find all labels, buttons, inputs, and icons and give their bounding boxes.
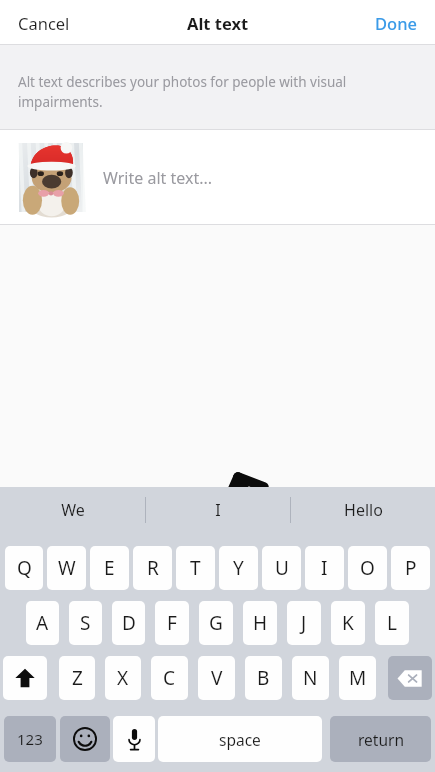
button[interactable]: Cancel (6, 4, 82, 42)
staticText: X (117, 665, 129, 691)
staticText: D (122, 610, 136, 636)
button[interactable]: 123 (4, 716, 56, 762)
button[interactable]: P (391, 546, 430, 590)
staticText: Alt text (187, 12, 249, 34)
button[interactable]: Hello (291, 487, 435, 532)
staticText: E (104, 555, 115, 581)
button[interactable]: W (47, 546, 86, 590)
button[interactable]: L (375, 601, 409, 645)
staticText: F (167, 610, 177, 636)
staticText: 123 (17, 729, 43, 749)
button[interactable]: S (69, 601, 102, 645)
staticText: P (405, 555, 417, 581)
button[interactable]: Q (5, 546, 43, 590)
button[interactable]: Emoji (60, 716, 110, 762)
staticText: return (358, 729, 404, 750)
button[interactable]: Backspace (388, 656, 432, 700)
button[interactable]: X (105, 656, 141, 700)
button[interactable]: C (151, 656, 188, 700)
button[interactable]: space (158, 716, 322, 762)
button[interactable]: A (26, 601, 59, 645)
staticText: S (80, 610, 91, 636)
button[interactable]: N (292, 656, 329, 700)
button[interactable]: M (339, 656, 376, 700)
staticText: space (219, 729, 261, 750)
staticText: O (360, 555, 375, 581)
button[interactable]: V (198, 656, 235, 700)
button[interactable]: T (176, 546, 215, 590)
button[interactable]: O (348, 546, 387, 590)
button[interactable]: Shift (3, 656, 47, 700)
staticText: I (321, 555, 328, 581)
staticText: B (257, 665, 270, 691)
staticText: Done (375, 12, 417, 34)
staticText: L (387, 610, 397, 636)
button[interactable]: B (245, 656, 282, 700)
staticText: J (301, 610, 307, 636)
staticText: Q (17, 555, 32, 581)
staticText: Z (72, 665, 83, 691)
button[interactable]: return (330, 716, 431, 762)
staticText: Y (233, 555, 244, 581)
button[interactable]: We (0, 487, 145, 532)
staticText: H (253, 610, 268, 636)
staticText: V (211, 665, 223, 691)
staticText: G (209, 610, 223, 636)
staticText: I (215, 499, 221, 521)
button[interactable]: I (305, 546, 344, 590)
staticText: We (61, 499, 85, 521)
staticText: R (147, 555, 159, 581)
staticText: Cancel (18, 12, 70, 34)
staticText: W (58, 555, 76, 581)
button[interactable]: Done (363, 4, 429, 42)
staticText: T (190, 555, 201, 581)
button[interactable]: Y (219, 546, 258, 590)
button[interactable]: Write alt text... (0, 130, 435, 225)
staticText: K (342, 610, 354, 636)
button[interactable]: E (90, 546, 129, 590)
button[interactable]: H (243, 601, 277, 645)
staticText: U (275, 555, 289, 581)
button[interactable]: Voice input (113, 716, 155, 762)
button[interactable]: F (155, 601, 189, 645)
staticText: M (349, 665, 367, 691)
button[interactable]: U (262, 546, 301, 590)
staticText: C (163, 665, 176, 691)
staticText: N (303, 665, 318, 691)
button[interactable]: D (112, 601, 145, 645)
button[interactable]: G (199, 601, 233, 645)
button[interactable]: J (287, 601, 321, 645)
staticText: Write alt text... (103, 167, 213, 189)
button[interactable]: Z (59, 656, 95, 700)
button[interactable]: R (133, 546, 172, 590)
staticText: A (36, 610, 49, 636)
staticText: Alt text describes your photos for peopl… (18, 73, 347, 111)
staticText: Hello (344, 499, 383, 521)
button[interactable]: I (146, 487, 290, 532)
button[interactable]: K (331, 601, 365, 645)
